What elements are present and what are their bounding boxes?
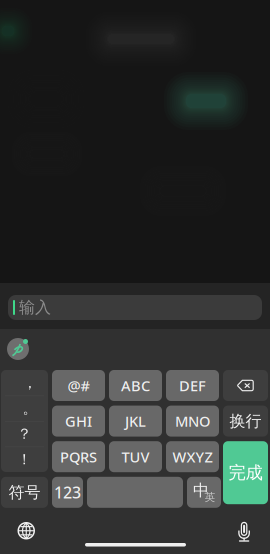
button[interactable]: 。	[1, 395, 48, 421]
staticText: ，	[22, 374, 37, 392]
staticText: 123	[54, 482, 81, 503]
staticText: 符号	[8, 482, 40, 502]
button[interactable]: Input method	[6, 337, 30, 361]
staticText: @#	[67, 376, 89, 395]
button[interactable]: WXYZ	[166, 441, 219, 472]
button[interactable]: Switch keyboard	[17, 522, 35, 539]
staticText: 英	[204, 491, 215, 504]
button[interactable]: 中	[187, 477, 221, 508]
button[interactable]: Dictation	[238, 521, 250, 542]
button[interactable]: ，	[1, 370, 48, 395]
staticText: TUV	[121, 447, 149, 466]
button[interactable]: 完成	[223, 441, 268, 504]
button[interactable]: DEF	[166, 370, 219, 401]
button[interactable]: Delete	[223, 370, 268, 401]
button[interactable]: JKL	[109, 406, 162, 437]
button[interactable]: @#	[52, 370, 105, 401]
button[interactable]: GHI	[52, 406, 105, 437]
staticText: ？	[17, 425, 32, 443]
staticText: MNO	[175, 411, 210, 431]
button[interactable]: ABC	[109, 370, 162, 401]
staticText: 中	[193, 480, 209, 500]
button[interactable]: Space	[87, 477, 183, 508]
staticText: 换行	[229, 411, 261, 431]
button[interactable]: TUV	[109, 441, 162, 472]
staticText: PQRS	[60, 447, 97, 466]
button[interactable]: 123	[52, 477, 83, 508]
staticText: JKL	[125, 411, 146, 431]
staticText: 。	[22, 399, 37, 417]
staticText: WXYZ	[172, 447, 212, 466]
staticText: 输入	[19, 298, 51, 317]
button[interactable]: PQRS	[52, 441, 105, 472]
button[interactable]: MNO	[166, 406, 219, 437]
staticText: DEF	[179, 376, 206, 395]
button[interactable]: 符号	[1, 477, 48, 508]
staticText: 完成	[228, 462, 262, 483]
staticText: ABC	[121, 376, 150, 395]
button[interactable]: 换行	[223, 406, 268, 437]
staticText: GHI	[65, 411, 92, 431]
staticText: ！	[17, 450, 32, 468]
button[interactable]: ？	[1, 421, 48, 446]
button[interactable]: ！	[1, 446, 48, 472]
button[interactable]: 输入	[8, 295, 262, 320]
